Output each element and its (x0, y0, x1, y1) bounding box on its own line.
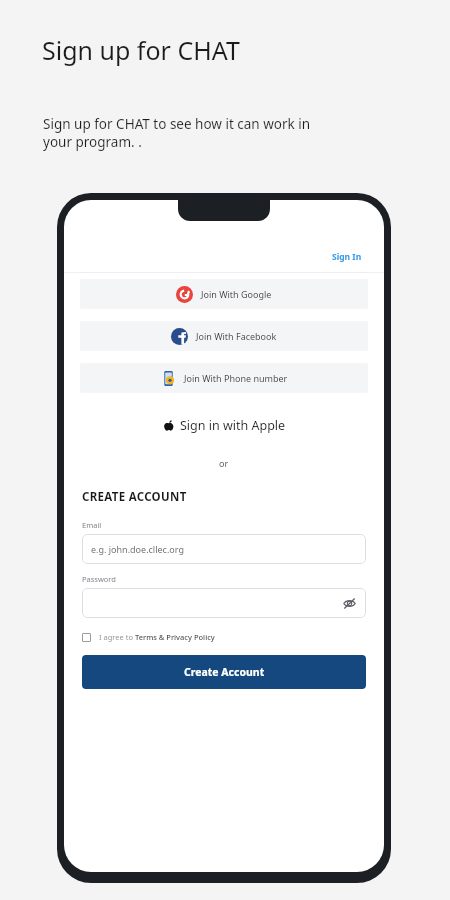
button[interactable]: Join With Phone number (80, 363, 368, 393)
staticText: Sign In (332, 251, 362, 263)
button[interactable]: Sign In (328, 248, 366, 266)
button[interactable]: Create Account (82, 655, 366, 689)
staticText: Create Account (184, 665, 265, 679)
button[interactable]: Join With Facebook (80, 321, 368, 351)
staticText: or (219, 457, 229, 469)
staticText: Sign up for CHAT (42, 33, 240, 67)
staticText: Terms & Privacy Policy (135, 632, 215, 642)
button[interactable]: I agree to (82, 630, 215, 644)
staticText: Email (82, 520, 102, 530)
button[interactable]: Show password (340, 594, 358, 612)
staticText: Join With Phone number (184, 372, 288, 384)
staticText: Sign in with Apple (180, 417, 286, 434)
staticText: Join With Facebook (196, 330, 277, 342)
button[interactable]: e.g. john.doe.cllec.org (82, 534, 366, 564)
staticText: Password (82, 574, 116, 584)
staticText: Join With Google (201, 288, 272, 300)
button[interactable]: Join With Google (80, 279, 368, 309)
button[interactable]: Show password (82, 588, 366, 618)
staticText: Sign up for CHAT to see how it can work … (43, 115, 408, 151)
staticText: CREATE ACCOUNT (82, 489, 187, 505)
staticText: I agree to (99, 632, 135, 642)
button[interactable]: Sign in with Apple (64, 411, 384, 440)
staticText: e.g. john.doe.cllec.org (91, 543, 184, 555)
